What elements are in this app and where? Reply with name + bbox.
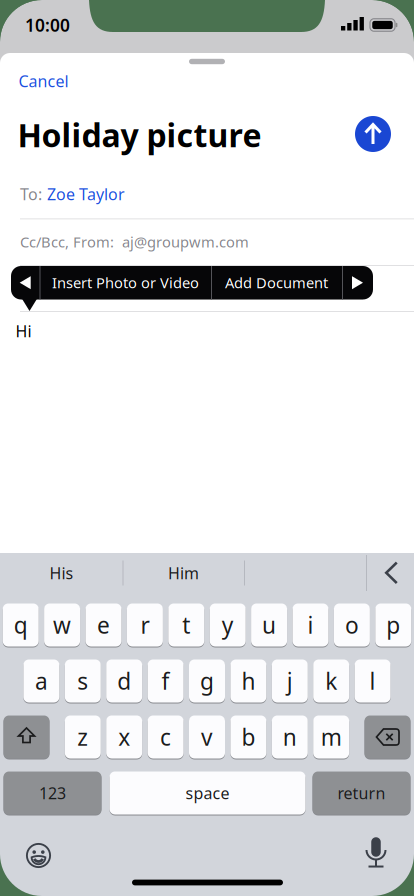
staticText: p <box>386 610 400 640</box>
button[interactable]: z <box>65 715 101 759</box>
button[interactable]: w <box>44 603 80 647</box>
button[interactable]: m <box>313 715 349 759</box>
button[interactable]: Insert Photo or Video <box>52 273 199 292</box>
staticText: Zoe Taylor <box>47 183 125 205</box>
button[interactable]: a <box>23 659 59 703</box>
staticText: space <box>185 782 229 804</box>
button[interactable]: f <box>148 659 184 703</box>
staticText: His <box>49 562 73 584</box>
staticText: l <box>370 666 376 696</box>
staticText: o <box>345 610 359 640</box>
button[interactable]: l <box>355 659 391 703</box>
staticText: h <box>241 666 255 696</box>
staticText: Holiday picture <box>17 113 261 156</box>
button[interactable]: Next menu items <box>342 266 373 299</box>
button[interactable]: Shift <box>3 715 49 759</box>
button[interactable]: space <box>109 771 305 815</box>
button[interactable]: Cc/Bcc, From: aj@groupwm.com <box>20 232 249 251</box>
staticText: 10:00 <box>25 13 70 36</box>
button[interactable]: His <box>1 552 121 594</box>
staticText: z <box>77 722 88 752</box>
staticText: s <box>77 666 88 696</box>
staticText: n <box>283 722 297 752</box>
button[interactable]: y <box>210 603 246 647</box>
button[interactable]: t <box>168 603 204 647</box>
button[interactable]: return <box>312 771 410 815</box>
button[interactable]: Hide predictions <box>386 562 397 583</box>
staticText: j <box>287 666 293 696</box>
staticText: k <box>325 666 337 696</box>
staticText: Insert Photo or Video <box>52 273 199 292</box>
staticText: e <box>97 610 110 640</box>
staticText: y <box>222 610 234 640</box>
staticText: Cancel <box>18 70 68 92</box>
staticText: c <box>160 722 171 752</box>
staticText: Add Document <box>225 273 328 292</box>
button[interactable]: Delete <box>364 715 410 759</box>
button[interactable]: Send <box>355 116 391 152</box>
button[interactable]: k <box>313 659 349 703</box>
button[interactable]: o <box>334 603 370 647</box>
button[interactable]: c <box>148 715 184 759</box>
staticText: r <box>140 610 149 640</box>
button[interactable]: b <box>230 715 266 759</box>
button[interactable]: v <box>189 715 225 759</box>
button[interactable]: To: <box>20 183 125 205</box>
button[interactable]: s <box>65 659 101 703</box>
staticText: f <box>162 666 170 696</box>
staticText: Hi <box>15 320 31 342</box>
staticText: b <box>241 722 255 752</box>
staticText: m <box>321 722 342 752</box>
button[interactable]: h <box>230 659 266 703</box>
staticText: 123 <box>39 782 66 804</box>
staticText: To: <box>20 183 42 205</box>
button[interactable]: p <box>375 603 411 647</box>
staticText: v <box>201 722 213 752</box>
staticText: i <box>307 610 313 640</box>
button[interactable]: q <box>3 603 39 647</box>
button[interactable]: e <box>85 603 121 647</box>
button[interactable]: Cancel <box>18 70 68 92</box>
button[interactable]: Dictate <box>363 838 389 870</box>
button[interactable]: g <box>189 659 225 703</box>
staticText: q <box>14 610 28 640</box>
button[interactable]: Emoji <box>25 842 51 868</box>
button[interactable]: Him <box>123 552 243 594</box>
button[interactable]: Add Document <box>225 273 328 292</box>
staticText: u <box>262 610 276 640</box>
button[interactable]: u <box>251 603 287 647</box>
button[interactable]: 123 <box>3 771 101 815</box>
button[interactable]: j <box>272 659 308 703</box>
staticText: Him <box>168 562 199 584</box>
button[interactable]: Previous menu items <box>11 266 39 299</box>
staticText: g <box>200 666 214 696</box>
staticText: x <box>118 722 130 752</box>
staticText: w <box>53 610 71 640</box>
staticText: d <box>117 666 131 696</box>
button[interactable]: r <box>127 603 163 647</box>
staticText: return <box>337 782 385 804</box>
button[interactable]: d <box>106 659 142 703</box>
button[interactable]: x <box>106 715 142 759</box>
button[interactable]: n <box>272 715 308 759</box>
staticText: Cc/Bcc, From: aj@groupwm.com <box>20 232 249 251</box>
button[interactable]: i <box>292 603 328 647</box>
staticText: t <box>182 610 190 640</box>
staticText: a <box>35 666 48 696</box>
